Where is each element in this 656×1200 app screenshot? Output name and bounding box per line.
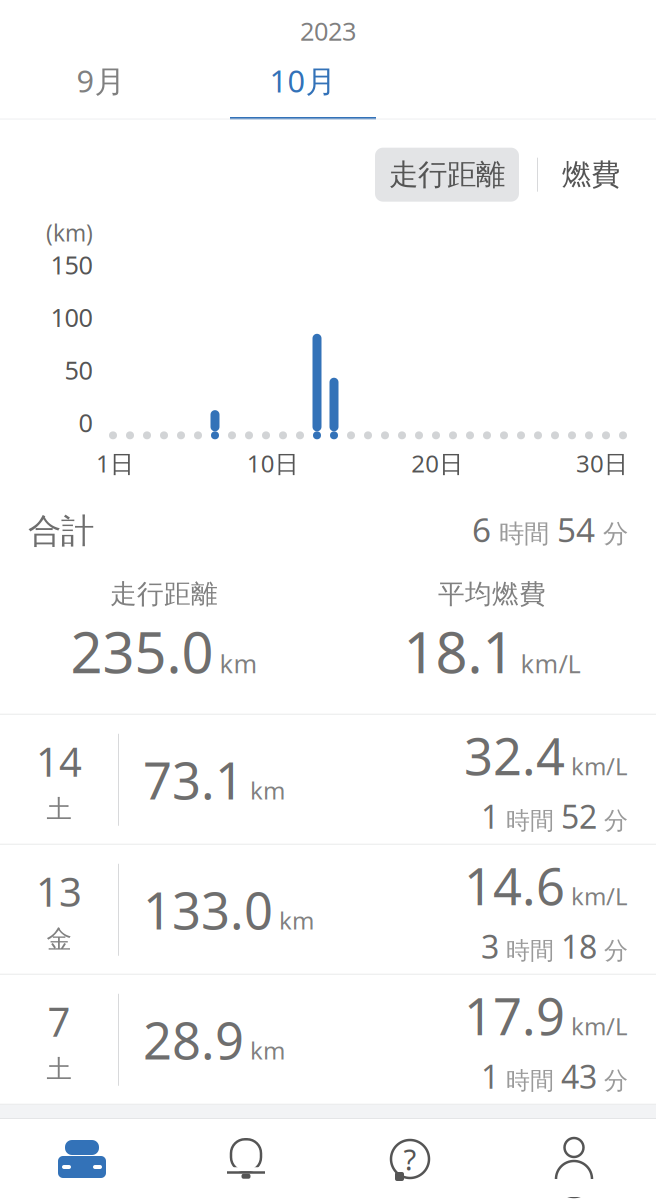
staticText: 時間	[499, 1066, 561, 1096]
button[interactable]: 13	[0, 845, 656, 975]
staticText: ?	[403, 1139, 416, 1178]
staticText: 235.0	[70, 614, 213, 689]
button[interactable]: 7	[0, 975, 656, 1105]
staticText: 時間	[499, 936, 561, 966]
staticText: 合計	[28, 511, 94, 552]
staticText: 17.9	[464, 982, 565, 1049]
button[interactable]: 14	[0, 715, 656, 845]
staticText: 14	[36, 735, 82, 788]
staticText: 18.1	[403, 614, 514, 689]
staticText: 分	[597, 806, 628, 836]
staticText: 3	[481, 925, 499, 968]
staticText: 32.4	[464, 722, 565, 789]
button[interactable]: お知らせ	[164, 1122, 328, 1196]
button[interactable]: 車両	[0, 1122, 164, 1196]
staticText: 平均燃費	[438, 578, 546, 610]
staticText: 土	[46, 1054, 71, 1085]
staticText: 43	[561, 1055, 597, 1098]
staticText: 1日	[96, 447, 134, 479]
staticText: 時間	[499, 806, 561, 836]
staticText: 10日	[247, 447, 299, 479]
staticText: 133.0	[143, 876, 273, 943]
staticText: 2023	[300, 14, 356, 48]
staticText: 6	[472, 507, 491, 551]
staticText: 73.1	[143, 746, 244, 813]
staticText: km	[250, 1034, 285, 1066]
staticText: 分	[597, 1066, 628, 1096]
staticText: 時間	[491, 518, 557, 549]
staticText: 0	[78, 406, 92, 439]
staticText: 燃費	[562, 157, 620, 193]
staticText: 54	[557, 507, 595, 551]
staticText: 150	[50, 248, 92, 281]
staticText: km/L	[520, 647, 580, 680]
staticText: 14.6	[464, 852, 565, 919]
staticText: km	[279, 904, 314, 936]
staticText: 分	[595, 518, 628, 549]
button[interactable]: 9月	[0, 62, 202, 120]
staticText: km/L	[571, 1010, 628, 1042]
staticText: (km)	[46, 218, 93, 248]
staticText: km	[219, 647, 257, 680]
staticText: 10月	[269, 60, 336, 101]
staticText: 18	[561, 925, 597, 968]
button[interactable]: 走行距離	[375, 148, 519, 202]
staticText: km/L	[571, 880, 628, 912]
staticText: 50	[64, 353, 92, 387]
staticText: 1	[481, 795, 499, 838]
staticText: 20日	[411, 447, 463, 479]
button[interactable]: アカウント	[492, 1122, 656, 1196]
staticText: 100	[50, 300, 92, 334]
button[interactable]: 燃費	[556, 148, 626, 202]
button[interactable]: ヘルプ	[328, 1122, 492, 1196]
staticText: 9月	[76, 60, 125, 101]
staticText: 30日	[576, 447, 628, 479]
button[interactable]: 10月	[202, 62, 404, 120]
staticText: 土	[46, 794, 71, 825]
staticText: 28.9	[143, 1006, 244, 1073]
staticText: 52	[561, 795, 597, 838]
staticText: 走行距離	[389, 157, 505, 193]
staticText: 走行距離	[110, 578, 218, 610]
staticText: 分	[597, 936, 628, 966]
staticText: 1	[481, 1055, 499, 1098]
staticText: 7	[47, 995, 70, 1048]
staticText: 13	[36, 865, 82, 918]
staticText: km	[250, 774, 285, 806]
staticText: km/L	[571, 750, 628, 782]
staticText: 金	[46, 924, 71, 955]
